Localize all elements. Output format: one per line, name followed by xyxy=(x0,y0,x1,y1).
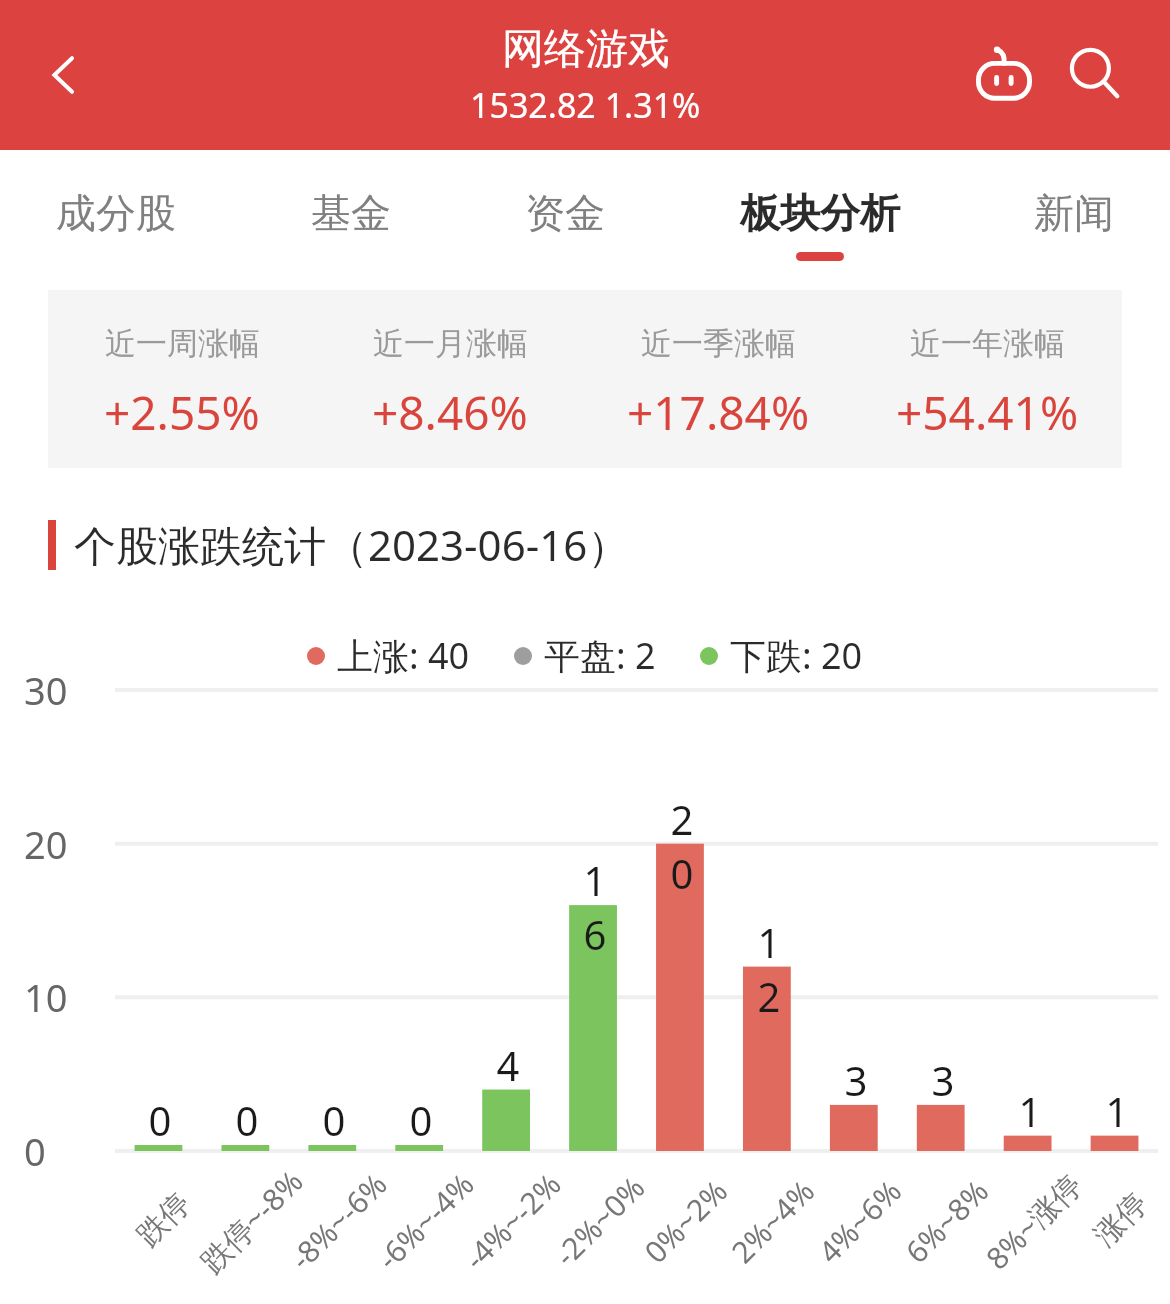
button[interactable]: 近一季涨幅 xyxy=(584,290,853,444)
staticText: 0 xyxy=(140,1093,180,1147)
staticText: 16 xyxy=(575,853,615,961)
staticText: 板块分析 xyxy=(740,188,900,238)
staticText: 8%~涨停 xyxy=(977,1164,1090,1278)
staticText: 0 xyxy=(401,1093,441,1147)
button[interactable]: Assistant robot xyxy=(958,29,1050,121)
staticText: -8%~-6% xyxy=(281,1164,395,1278)
staticText: 1 xyxy=(1097,1084,1137,1138)
staticText: 近一年涨幅 xyxy=(910,324,1065,363)
button[interactable]: 新闻 xyxy=(1026,150,1122,262)
staticText: 1 xyxy=(1010,1084,1050,1138)
staticText: 跌停 xyxy=(129,1185,198,1254)
button[interactable]: 下跌: 20 xyxy=(700,631,863,680)
staticText: 资金 xyxy=(525,188,605,238)
button[interactable]: 基金 xyxy=(303,150,399,262)
staticText: 0 xyxy=(227,1093,267,1147)
staticText: 新闻 xyxy=(1034,188,1114,238)
staticText: 跌停~-8% xyxy=(191,1161,311,1281)
staticText: 4%~6% xyxy=(809,1170,910,1271)
staticText: 近一月涨幅 xyxy=(373,324,528,363)
staticText: 上涨: 40 xyxy=(337,631,470,680)
button[interactable]: 平盘: 2 xyxy=(514,631,656,680)
staticText: 0%~2% xyxy=(635,1170,736,1271)
staticText: 4 xyxy=(488,1038,528,1092)
staticText: 6%~8% xyxy=(896,1170,997,1271)
staticText: 12 xyxy=(749,915,789,1023)
staticText: +8.46% xyxy=(372,381,528,444)
staticText: 10 xyxy=(24,971,68,1023)
staticText: 20 xyxy=(662,792,702,900)
staticText: 1532.82 1.31% xyxy=(470,82,701,128)
staticText: 3 xyxy=(836,1053,876,1107)
staticText: -4%~-2% xyxy=(455,1164,569,1278)
staticText: 近一周涨幅 xyxy=(105,324,260,363)
staticText: 0 xyxy=(314,1093,354,1147)
button[interactable]: 近一年涨幅 xyxy=(853,290,1122,444)
staticText: 成分股 xyxy=(56,188,176,238)
button[interactable]: Search xyxy=(1050,29,1142,121)
staticText: 2%~4% xyxy=(722,1170,823,1271)
staticText: 平盘: 2 xyxy=(544,631,656,680)
button[interactable]: 近一月涨幅 xyxy=(316,290,584,444)
button[interactable]: 成分股 xyxy=(48,150,184,262)
button[interactable]: 上涨: 40 xyxy=(307,631,470,680)
button[interactable]: 资金 xyxy=(517,150,613,262)
staticText: 基金 xyxy=(311,188,391,238)
staticText: 0 xyxy=(24,1125,46,1177)
staticText: 个股涨跌统计（2023-06-16） xyxy=(74,516,630,573)
staticText: +2.55% xyxy=(104,381,260,444)
staticText: 3 xyxy=(923,1053,963,1107)
staticText: 网络游戏 xyxy=(502,23,670,76)
button[interactable]: 近一周涨幅 xyxy=(48,290,316,444)
button[interactable]: 板块分析 xyxy=(732,150,908,271)
staticText: 20 xyxy=(24,818,68,870)
button[interactable]: Back xyxy=(22,33,106,117)
staticText: +17.84% xyxy=(627,381,810,444)
staticText: -2%~0% xyxy=(545,1167,653,1275)
staticText: 30 xyxy=(24,664,68,716)
staticText: 涨停 xyxy=(1086,1185,1155,1254)
staticText: 下跌: 20 xyxy=(730,631,863,680)
staticText: +54.41% xyxy=(896,381,1079,444)
staticText: 近一季涨幅 xyxy=(641,324,796,363)
staticText: -6%~-4% xyxy=(368,1164,482,1278)
